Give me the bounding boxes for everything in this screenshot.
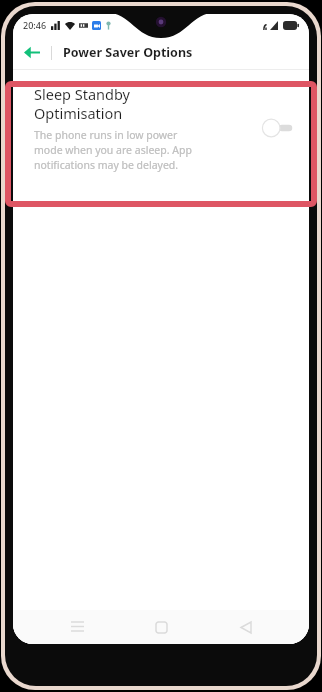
button[interactable]: Recents — [56, 610, 98, 644]
staticText: Power Saver Options — [63, 44, 193, 61]
button[interactable]: Sleep Standby Optimisation — [13, 70, 309, 188]
button[interactable]: Back — [13, 36, 51, 69]
staticText: Sleep Standby Optimisation — [34, 84, 130, 123]
button[interactable]: Back — [225, 610, 267, 644]
staticText: The phone runs in low power mode when yo… — [34, 128, 206, 172]
button[interactable]: Sleep Standby Optimisation toggle — [261, 117, 295, 139]
button[interactable]: Home — [140, 610, 182, 644]
staticText: 20:46 — [23, 19, 47, 31]
